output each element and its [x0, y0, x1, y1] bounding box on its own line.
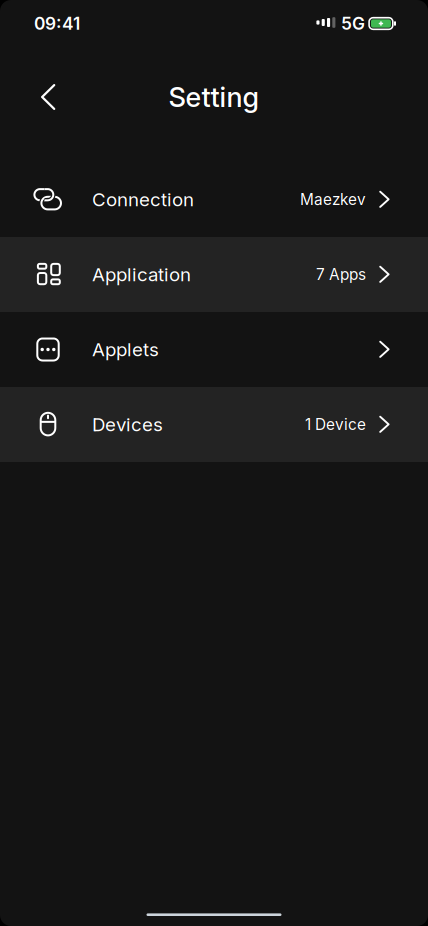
- staticText: 5G: [341, 13, 365, 34]
- button[interactable]: Application: [0, 237, 428, 312]
- button[interactable]: Connection: [0, 162, 428, 237]
- staticText: Connection: [92, 188, 194, 211]
- staticText: Devices: [92, 413, 163, 436]
- staticText: Maezkev: [300, 190, 366, 209]
- button[interactable]: Back: [0, 84, 56, 110]
- staticText: Applets: [92, 338, 159, 361]
- button[interactable]: Devices: [0, 387, 428, 462]
- staticText: 1 Device: [305, 415, 366, 434]
- staticText: 09:41: [34, 13, 80, 34]
- staticText: Setting: [168, 80, 259, 114]
- button[interactable]: Applets: [0, 312, 428, 387]
- staticText: Application: [92, 263, 191, 286]
- staticText: 7 Apps: [316, 265, 366, 284]
